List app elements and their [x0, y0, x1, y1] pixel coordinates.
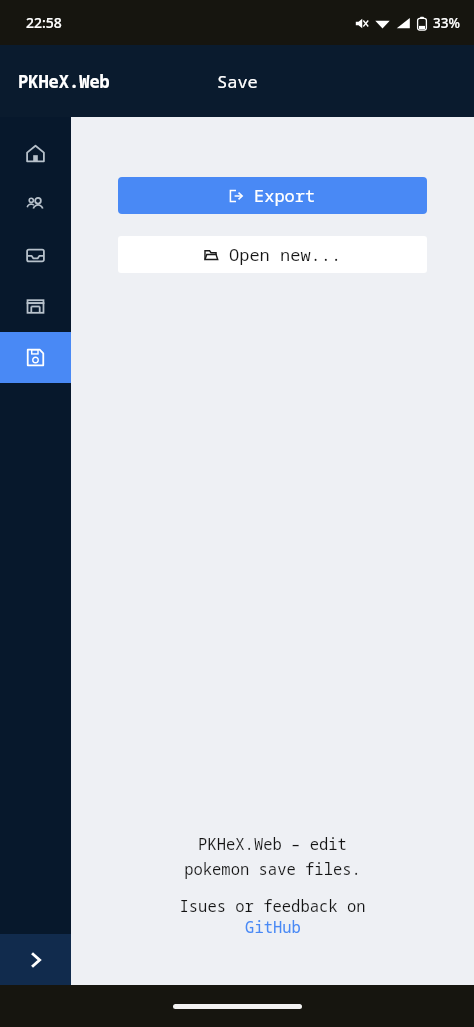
button[interactable]: Box: [0, 230, 71, 281]
button[interactable]: Home: [0, 128, 71, 179]
staticText: Isues or feedback on: [179, 895, 366, 916]
button[interactable]: Expand menu: [0, 934, 71, 985]
staticText: 33%: [433, 14, 460, 32]
staticText: Export: [254, 184, 316, 207]
button[interactable]: Open new...: [118, 236, 427, 273]
staticText: PKHeX.Web – edit pokemon save files.: [184, 833, 361, 879]
button[interactable]: Party: [0, 179, 71, 230]
button[interactable]: Bank: [0, 281, 71, 332]
staticText: 22:58: [26, 13, 62, 32]
staticText: GitHub: [245, 916, 301, 937]
staticText: PKHeX.Web: [18, 70, 110, 93]
staticText: Open new...: [229, 243, 342, 266]
button[interactable]: Export: [118, 177, 427, 214]
staticText: Save: [217, 70, 258, 93]
button[interactable]: GitHub: [245, 916, 301, 937]
button[interactable]: Save: [0, 332, 71, 383]
